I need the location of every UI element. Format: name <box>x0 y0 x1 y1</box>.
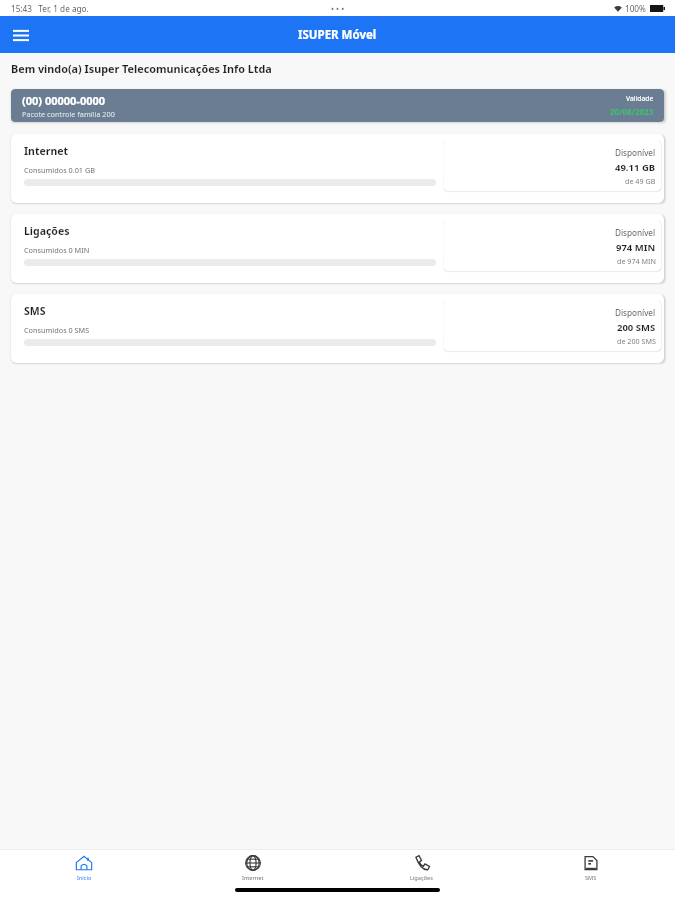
staticText: 20/08/2023 <box>610 106 654 117</box>
staticText: (00) 00000-0000 <box>22 93 106 108</box>
staticText: Internet <box>242 874 264 882</box>
staticText: Consumidos 0 SMS <box>24 325 90 335</box>
staticText: 974 MIN <box>616 241 656 254</box>
staticText: SMS <box>585 874 597 882</box>
button[interactable]: Menu <box>8 22 34 48</box>
staticText: de 200 SMS <box>617 336 656 346</box>
staticText: de 49 GB <box>625 176 656 186</box>
staticText: Disponível <box>615 147 656 158</box>
staticText: Consumidos 0 MIN <box>24 245 90 255</box>
staticText: Bem vindo(a) Isuper Telecomunicações Inf… <box>11 61 272 76</box>
button[interactable]: SMS <box>506 850 675 887</box>
staticText: Pacote controle família 200 <box>22 109 115 119</box>
staticText: Disponível <box>615 307 656 318</box>
staticText: 15:43 Ter, 1 de ago. <box>11 3 89 14</box>
button[interactable]: Internet <box>168 850 337 887</box>
staticText: 49.11 GB <box>615 161 656 174</box>
button[interactable]: Internet <box>11 134 664 203</box>
button[interactable]: Ligações <box>11 214 664 283</box>
button[interactable]: SMS <box>11 294 664 363</box>
button[interactable]: Ligações <box>337 850 506 887</box>
staticText: Internet <box>24 144 69 158</box>
staticText: ISUPER Móvel <box>298 27 377 43</box>
button[interactable]: Início <box>0 850 168 887</box>
staticText: Ligações <box>24 224 70 238</box>
staticText: Validade <box>626 94 654 103</box>
staticText: 200 SMS <box>617 321 656 334</box>
staticText: de 974 MIN <box>617 256 656 266</box>
staticText: SMS <box>24 304 46 318</box>
staticText: 100% <box>625 3 646 14</box>
staticText: • • • <box>331 3 345 14</box>
staticText: Início <box>77 874 92 882</box>
staticText: Ligações <box>410 874 433 882</box>
staticText: Disponível <box>615 227 656 238</box>
staticText: Consumidos 0.01 GB <box>24 165 95 175</box>
button[interactable]: (00) 00000-0000 <box>11 89 664 122</box>
